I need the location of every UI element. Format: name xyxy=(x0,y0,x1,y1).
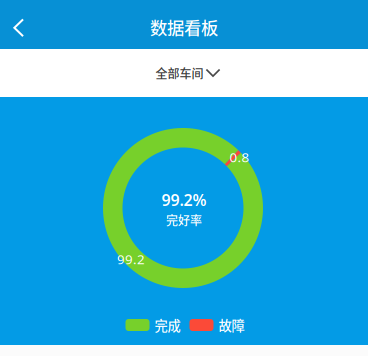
staticText: 故障 xyxy=(218,315,244,335)
staticText: 完好率 xyxy=(166,211,202,229)
button[interactable]: 全部车间 xyxy=(118,49,258,97)
button[interactable]: Back xyxy=(0,6,39,50)
staticText: 全部车间 xyxy=(155,64,203,82)
staticText: 99.2 xyxy=(117,250,145,268)
staticText: 99.2% xyxy=(161,189,206,210)
staticText: 数据看板 xyxy=(150,14,218,40)
staticText: 完成 xyxy=(154,315,180,335)
staticText: 0.8 xyxy=(229,148,249,166)
